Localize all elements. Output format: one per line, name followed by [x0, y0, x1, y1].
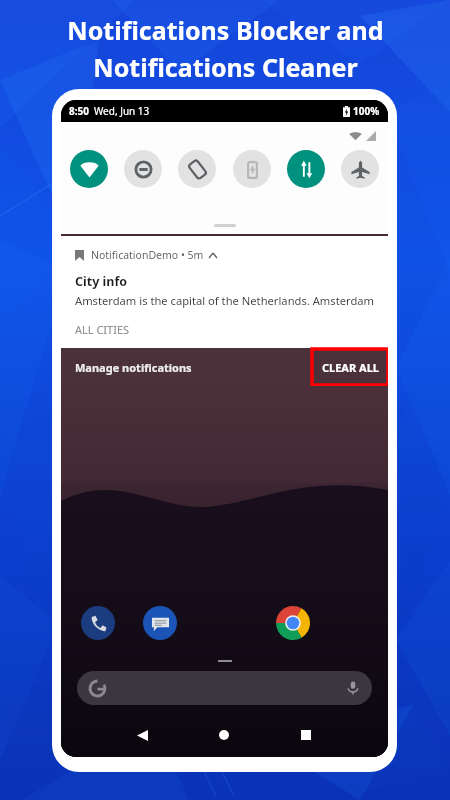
staticText: 8:50: [69, 104, 89, 118]
button[interactable]: Mobile data: [287, 150, 325, 188]
button[interactable]: Phone: [81, 606, 115, 640]
staticText: City info: [75, 273, 128, 290]
button[interactable]: Do not disturb: [124, 150, 162, 188]
button[interactable]: Manage notifications: [75, 360, 192, 375]
staticText: ALL CITIES: [75, 322, 130, 337]
staticText: 100%: [353, 104, 380, 118]
button[interactable]: Wi-Fi: [70, 150, 108, 188]
staticText: Notifications Blocker and: [67, 13, 384, 47]
button[interactable]: ALL CITIES: [75, 321, 130, 338]
button[interactable]: Messages: [143, 606, 177, 640]
button[interactable]: Airplane mode: [341, 150, 379, 188]
button[interactable]: Recent apps: [291, 720, 321, 750]
staticText: Notifications Cleaner: [93, 50, 358, 84]
button[interactable]: Google search: [77, 671, 372, 705]
button[interactable]: Back: [127, 720, 157, 750]
staticText: Manage notifications: [75, 360, 192, 375]
button[interactable]: Clear all notifications: [312, 349, 388, 385]
staticText: CLEAR ALL: [322, 360, 379, 375]
button[interactable]: Battery saver: [233, 150, 271, 188]
button[interactable]: Chrome: [276, 606, 310, 640]
staticText: NotificationDemo • 5m: [91, 248, 204, 262]
button[interactable]: Home: [209, 720, 239, 750]
button[interactable]: Auto rotate: [178, 150, 216, 188]
staticText: Amsterdam is the capital of the Netherla…: [75, 293, 376, 308]
staticText: Wed, Jun 13: [94, 104, 150, 118]
